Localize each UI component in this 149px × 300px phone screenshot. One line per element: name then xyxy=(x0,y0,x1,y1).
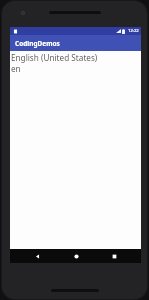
button[interactable]: Recents xyxy=(102,249,126,263)
staticText: CodingDemos xyxy=(15,39,60,48)
button[interactable]: CodingDemos xyxy=(10,35,141,51)
button[interactable]: en xyxy=(11,63,21,74)
button[interactable]: Home xyxy=(64,249,88,263)
staticText: 12:22 xyxy=(128,28,139,34)
button[interactable]: Back xyxy=(25,249,49,263)
button[interactable]: English (United States) xyxy=(11,52,98,63)
